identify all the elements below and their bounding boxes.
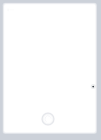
button[interactable]: More options (88, 81, 98, 91)
button[interactable]: Primary action (41, 112, 55, 126)
